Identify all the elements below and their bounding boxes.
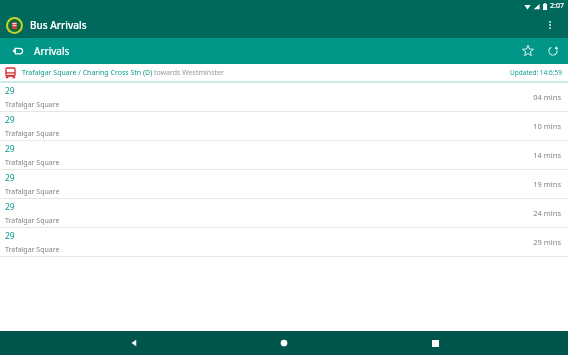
staticText: Trafalgar Square xyxy=(5,216,60,226)
staticText: 29 xyxy=(5,143,15,155)
staticText: Arrivals xyxy=(34,44,70,58)
staticText: 10 mins xyxy=(533,121,561,131)
button[interactable]: Back xyxy=(117,331,151,355)
staticText: Updated: 14:6:59 xyxy=(510,68,562,77)
staticText: 29 xyxy=(5,201,15,213)
staticText: 29 mins xyxy=(533,237,561,247)
staticText: Trafalgar Square xyxy=(5,129,60,139)
button[interactable]: Home xyxy=(267,331,301,355)
button[interactable]: Refresh xyxy=(542,40,564,62)
button[interactable]: 29 xyxy=(0,199,568,227)
button[interactable]: Favourite xyxy=(517,40,539,62)
button[interactable]: 29 xyxy=(0,83,568,111)
button[interactable]: 29 xyxy=(0,112,568,140)
button[interactable]: More options xyxy=(538,13,562,37)
staticText: Bus Arrivals xyxy=(30,18,87,32)
staticText: 29 xyxy=(5,85,15,97)
button[interactable]: Trafalgar Square / Charing Cross Stn (D) xyxy=(0,64,568,81)
button[interactable]: Recent apps xyxy=(418,331,452,355)
staticText: 04 mins xyxy=(533,92,561,102)
button[interactable]: 29 xyxy=(0,228,568,256)
staticText: Trafalgar Square xyxy=(5,100,60,110)
staticText: 24 mins xyxy=(533,208,561,218)
button[interactable]: App icon xyxy=(6,17,23,34)
staticText: 2:07 xyxy=(550,1,564,11)
button[interactable]: 29 xyxy=(0,141,568,169)
staticText: 14 mins xyxy=(533,150,561,160)
staticText: 19 mins xyxy=(533,179,561,189)
staticText: Trafalgar Square xyxy=(5,158,60,168)
staticText: Trafalgar Square / Charing Cross Stn (D) xyxy=(22,68,153,78)
button[interactable]: 29 xyxy=(0,170,568,198)
staticText: Trafalgar Square xyxy=(5,187,60,197)
staticText: Trafalgar Square xyxy=(5,245,60,255)
staticText: 29 xyxy=(5,172,15,184)
staticText: 29 xyxy=(5,230,15,242)
staticText: 29 xyxy=(5,114,15,126)
staticText: towards Westminster xyxy=(154,68,224,78)
button[interactable]: Back xyxy=(6,40,28,62)
